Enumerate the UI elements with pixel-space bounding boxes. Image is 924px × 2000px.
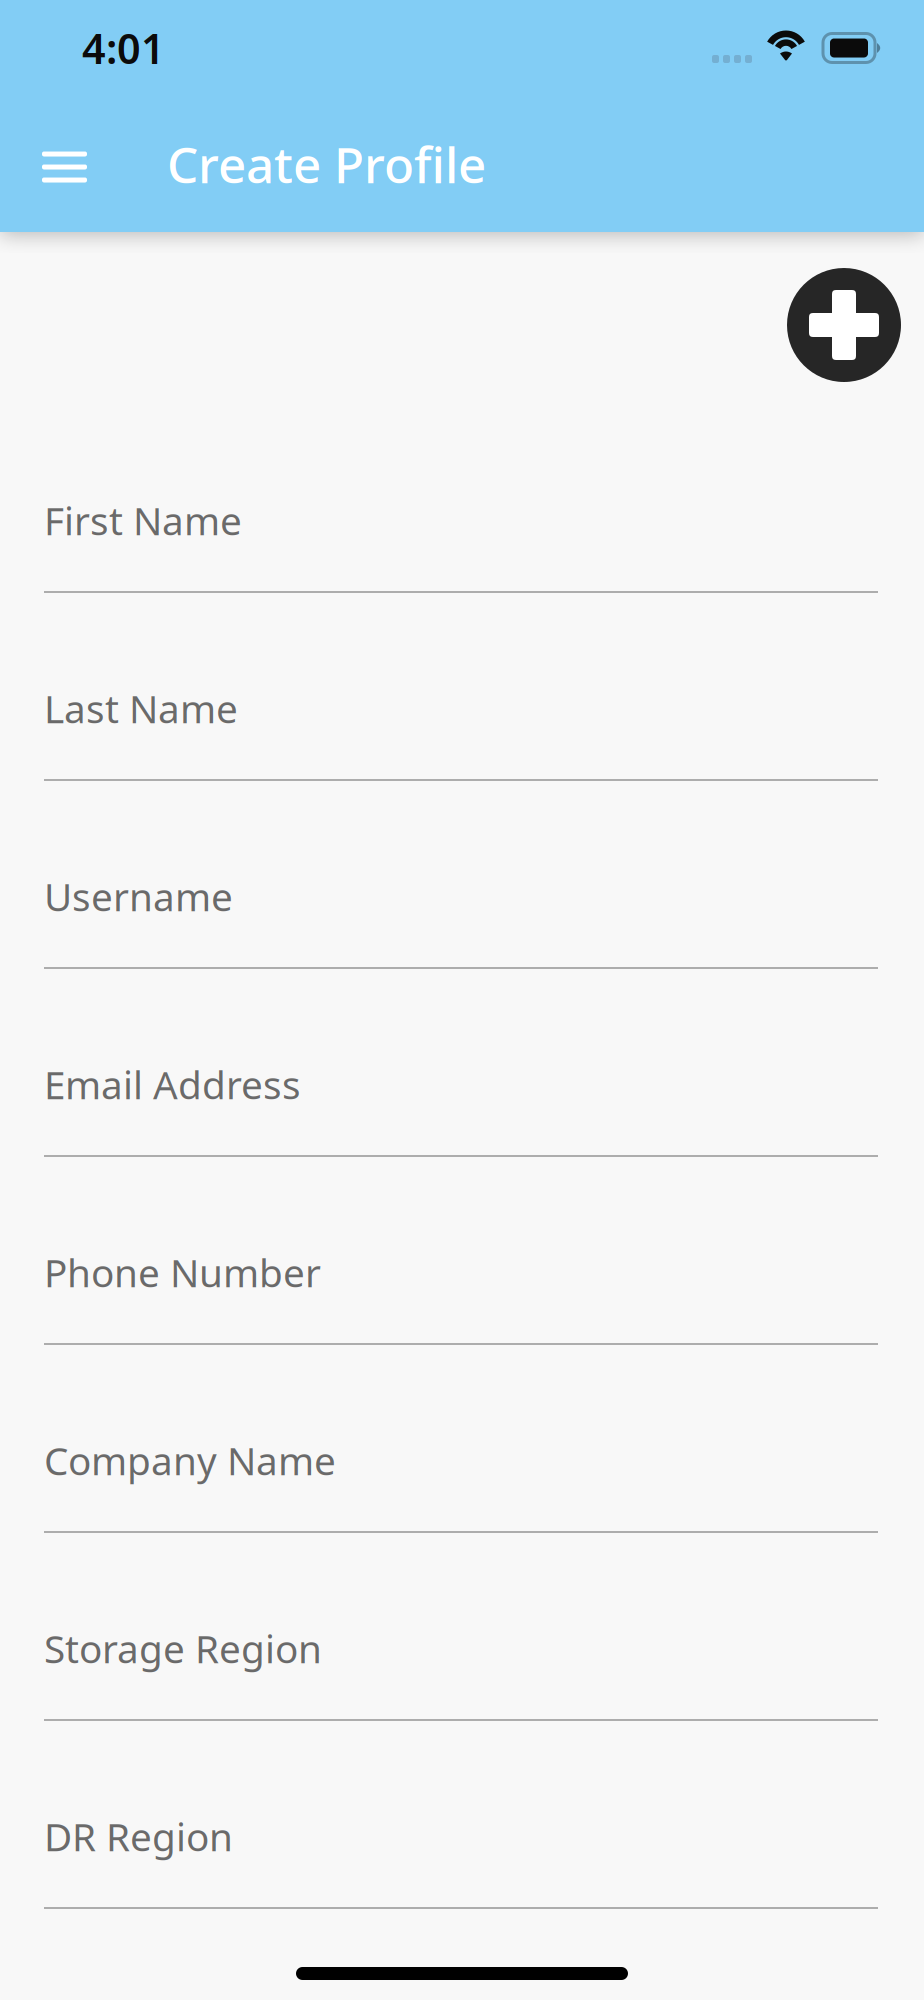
staticText: DR Region <box>44 1811 233 1862</box>
button[interactable]: First Name <box>0 432 924 620</box>
button[interactable]: Email Address <box>0 996 924 1184</box>
staticText: Storage Region <box>44 1623 322 1674</box>
button[interactable]: Storage Region <box>0 1560 924 1748</box>
staticText: Email Address <box>44 1059 301 1110</box>
staticText: Last Name <box>44 683 238 734</box>
staticText: 4:01 <box>82 21 165 75</box>
button[interactable]: Last Name <box>0 620 924 808</box>
button[interactable]: Username <box>0 808 924 996</box>
button[interactable]: Add <box>787 268 901 382</box>
staticText: First Name <box>44 495 242 546</box>
staticText: Phone Number <box>44 1247 321 1298</box>
staticText: Create Profile <box>167 131 486 197</box>
staticText: Username <box>44 871 233 922</box>
button[interactable]: Menu <box>26 119 115 208</box>
button[interactable]: DR Region <box>0 1748 924 1909</box>
button[interactable]: Phone Number <box>0 1184 924 1372</box>
button[interactable]: Company Name <box>0 1372 924 1560</box>
staticText: Company Name <box>44 1435 336 1486</box>
